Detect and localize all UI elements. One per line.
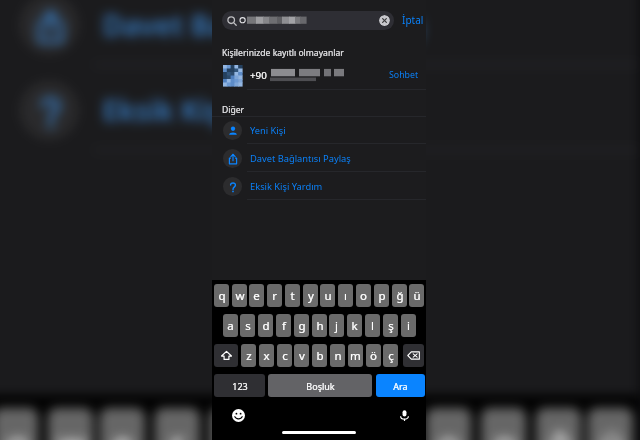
staticText: e: [112, 420, 133, 440]
button[interactable]: Dictation: [397, 408, 411, 422]
staticText: Eksik Kişi Yardım: [250, 180, 323, 193]
button[interactable]: u: [320, 284, 335, 307]
button[interactable]: Davet Bağlantısı Paylaş: [0, 0, 639, 66]
staticText: o: [438, 420, 459, 440]
staticText: ğ: [396, 288, 404, 304]
button[interactable]: İptal: [400, 9, 426, 31]
staticText: l: [371, 318, 374, 334]
button[interactable]: Davet Bağlantısı Paylaş: [212, 144, 426, 172]
staticText: ç: [388, 348, 394, 364]
button[interactable]: 123: [214, 374, 265, 397]
button[interactable]: s: [240, 314, 255, 337]
button[interactable]: z: [241, 344, 256, 367]
staticText: b: [316, 348, 324, 364]
button[interactable]: ğ: [392, 284, 407, 307]
staticText: h: [316, 318, 324, 334]
button[interactable]: Search field: [222, 11, 394, 30]
button[interactable]: p: [374, 284, 389, 307]
button[interactable]: e: [249, 284, 264, 307]
button[interactable]: n: [330, 344, 345, 367]
button[interactable]: ö: [366, 344, 381, 367]
staticText: y: [308, 288, 314, 304]
staticText: c: [282, 348, 288, 364]
staticText: Yeni Kişi: [250, 124, 286, 137]
button[interactable]: v: [294, 344, 309, 367]
staticText: m: [350, 348, 361, 364]
button[interactable]: ı: [371, 408, 417, 440]
button[interactable]: m: [348, 344, 363, 367]
button[interactable]: ü: [409, 284, 424, 307]
button[interactable]: k: [347, 314, 362, 337]
button[interactable]: +90: [212, 62, 426, 88]
staticText: Eksik Kişi Yardım: [102, 90, 334, 130]
button[interactable]: t: [209, 408, 255, 440]
staticText: g: [298, 318, 306, 334]
button[interactable]: Shift: [214, 344, 238, 367]
button[interactable]: y: [303, 284, 318, 307]
button[interactable]: d: [258, 314, 273, 337]
button[interactable]: Emoji: [231, 408, 245, 422]
button[interactable]: y: [264, 408, 310, 440]
button[interactable]: r: [267, 284, 282, 307]
button[interactable]: u: [316, 408, 362, 440]
button[interactable]: c: [277, 344, 292, 367]
button[interactable]: Eksik Kişi Yardım: [0, 66, 639, 151]
button[interactable]: Boşluk: [268, 374, 372, 397]
button[interactable]: Backspace: [403, 344, 424, 367]
button[interactable]: a: [223, 314, 238, 337]
button[interactable]: o: [356, 284, 371, 307]
staticText: r: [272, 288, 277, 304]
button[interactable]: q: [0, 408, 38, 440]
button[interactable]: Yeni Kişi: [212, 116, 426, 144]
staticText: s: [245, 318, 251, 334]
staticText: ü: [600, 420, 624, 440]
button[interactable]: l: [365, 314, 380, 337]
staticText: ü: [413, 288, 421, 304]
button[interactable]: w: [232, 284, 247, 307]
staticText: p: [493, 420, 517, 440]
staticText: o: [360, 288, 367, 304]
button[interactable]: Eksik Kişi Yardım: [212, 172, 426, 200]
button[interactable]: Clear search: [379, 15, 390, 26]
button[interactable]: p: [481, 408, 526, 440]
button[interactable]: e: [99, 408, 145, 440]
staticText: +90: [250, 69, 267, 82]
staticText: u: [328, 420, 353, 440]
button[interactable]: g: [294, 314, 309, 337]
button[interactable]: q: [214, 284, 229, 307]
staticText: Diğer: [222, 104, 245, 116]
staticText: z: [246, 348, 252, 364]
button[interactable]: ü: [587, 408, 633, 440]
button[interactable]: i: [401, 314, 416, 337]
staticText: ı: [344, 288, 347, 304]
button[interactable]: ı: [338, 284, 353, 307]
button[interactable]: f: [276, 314, 291, 337]
button[interactable]: ş: [383, 314, 398, 337]
staticText: w: [57, 420, 87, 440]
button[interactable]: b: [312, 344, 327, 367]
staticText: x: [263, 348, 270, 364]
button[interactable]: j: [329, 314, 344, 337]
button[interactable]: t: [285, 284, 300, 307]
staticText: Sohbet: [389, 69, 419, 81]
staticText: 123: [232, 380, 248, 392]
button[interactable]: o: [426, 408, 472, 440]
button[interactable]: Ara: [376, 374, 425, 397]
staticText: Boşluk: [306, 380, 335, 392]
button[interactable]: r: [154, 408, 200, 440]
staticText: t: [224, 420, 240, 440]
staticText: v: [299, 348, 305, 364]
staticText: d: [262, 318, 270, 334]
button[interactable]: h: [312, 314, 327, 337]
staticText: İptal: [402, 13, 424, 27]
staticText: ş: [388, 318, 394, 334]
staticText: q: [5, 420, 29, 440]
staticText: Kişilerinizde kayıtlı olmayanlar: [222, 47, 344, 59]
staticText: w: [235, 288, 245, 304]
button[interactable]: ç: [383, 344, 398, 367]
button[interactable]: ğ: [536, 408, 581, 440]
button[interactable]: w: [48, 408, 93, 440]
staticText: ğ: [548, 420, 572, 440]
button[interactable]: x: [259, 344, 274, 367]
staticText: e: [253, 288, 260, 304]
